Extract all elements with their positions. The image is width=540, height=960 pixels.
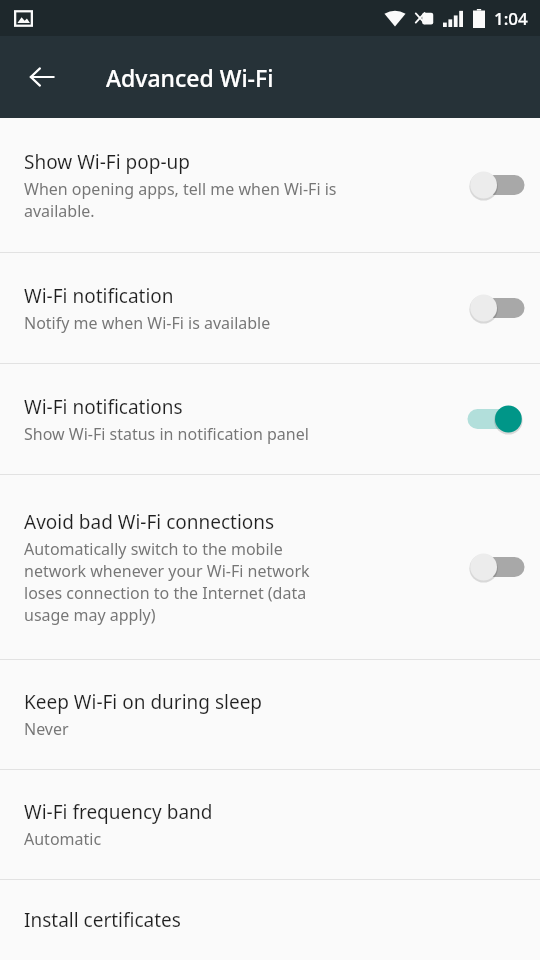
- staticText: When opening apps, tell me when Wi-Fi is…: [24, 178, 337, 222]
- staticText: Automatically switch to the mobile netwo…: [24, 538, 310, 626]
- staticText: Wi-Fi frequency band: [24, 799, 213, 825]
- button[interactable]: Back: [14, 49, 70, 105]
- staticText: Never: [24, 718, 69, 740]
- staticText: 1:04: [494, 7, 528, 30]
- button[interactable]: Install certificates: [0, 880, 540, 960]
- button[interactable]: Wi-Fi notifications: [0, 364, 540, 474]
- staticText: Avoid bad Wi-Fi connections: [24, 509, 275, 535]
- button[interactable]: Off: [465, 165, 527, 205]
- staticText: Install certificates: [24, 907, 181, 933]
- button[interactable]: Avoid bad Wi-Fi connections: [0, 475, 540, 659]
- staticText: Keep Wi-Fi on during sleep: [24, 689, 263, 715]
- staticText: Wi-Fi notification: [24, 283, 174, 309]
- button[interactable]: Off: [465, 547, 527, 587]
- button[interactable]: Wi-Fi notification: [0, 253, 540, 363]
- staticText: Automatic: [24, 828, 102, 850]
- button[interactable]: Keep Wi-Fi on during sleep: [0, 660, 540, 769]
- staticText: Wi-Fi notifications: [24, 394, 183, 420]
- staticText: Notify me when Wi-Fi is available: [24, 312, 271, 334]
- staticText: Show Wi-Fi status in notification panel: [24, 423, 309, 445]
- button[interactable]: On: [465, 399, 527, 439]
- button[interactable]: Show Wi-Fi pop-up: [0, 118, 540, 252]
- staticText: Advanced Wi-Fi: [106, 62, 274, 93]
- staticText: Show Wi-Fi pop-up: [24, 149, 190, 175]
- button[interactable]: Off: [465, 288, 527, 328]
- button[interactable]: Wi-Fi frequency band: [0, 770, 540, 879]
